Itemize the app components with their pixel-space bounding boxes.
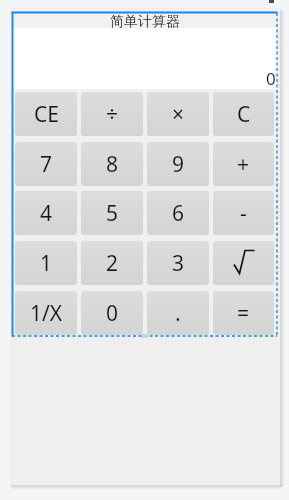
button[interactable]: 2 — [81, 241, 143, 285]
button[interactable]: C — [213, 92, 274, 136]
staticText: 1/X — [30, 299, 63, 328]
button[interactable]: 3 — [147, 241, 209, 285]
button[interactable]: + — [213, 142, 274, 186]
button[interactable]: 8 — [81, 142, 143, 186]
staticText: 0 — [266, 67, 276, 90]
staticText: 1 — [40, 249, 53, 278]
button[interactable]: 6 — [147, 191, 209, 235]
staticText: 2 — [106, 249, 119, 278]
staticText: 5 — [106, 199, 119, 228]
button[interactable]: 5 — [81, 191, 143, 235]
staticText: 简单计算器 — [110, 13, 180, 28]
staticText: 3 — [172, 249, 185, 278]
staticText: CE — [34, 100, 59, 129]
staticText: 8 — [106, 150, 119, 179]
button[interactable]: 1 — [15, 241, 77, 285]
staticText: × — [172, 100, 185, 129]
staticText: + — [237, 150, 250, 179]
button[interactable]: . — [147, 291, 209, 335]
staticText: 0 — [106, 299, 119, 328]
staticText: = — [237, 299, 250, 328]
button[interactable]: CE — [15, 92, 77, 136]
button[interactable]: ÷ — [81, 92, 143, 136]
button[interactable]: 9 — [147, 142, 209, 186]
staticText: 7 — [40, 150, 53, 179]
staticText: - — [240, 199, 247, 228]
staticText: 6 — [172, 199, 185, 228]
staticText: 4 — [40, 199, 53, 228]
button[interactable]: 0 — [81, 291, 143, 335]
button[interactable]: 7 — [15, 142, 77, 186]
button[interactable]: - — [213, 191, 274, 235]
button[interactable]: = — [213, 291, 274, 335]
button[interactable]: 4 — [15, 191, 77, 235]
staticText: . — [175, 299, 181, 328]
button[interactable]: × — [147, 92, 209, 136]
staticText: ÷ — [106, 100, 119, 129]
staticText: 9 — [172, 150, 185, 179]
button[interactable]: 1/X — [15, 291, 77, 335]
staticText: C — [237, 100, 251, 129]
button[interactable] — [213, 241, 274, 285]
